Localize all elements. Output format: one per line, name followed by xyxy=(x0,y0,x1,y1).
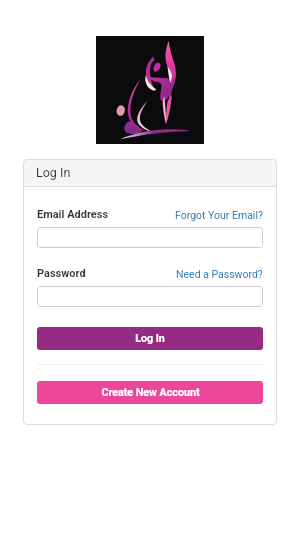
staticText: Password xyxy=(37,267,86,280)
button[interactable]: Password field xyxy=(37,286,263,307)
button[interactable]: Forgot Your Email? xyxy=(175,209,263,221)
button[interactable]: Create New Account xyxy=(37,381,263,404)
button[interactable]: Need a Password? xyxy=(176,268,263,280)
other: App logo xyxy=(96,36,204,144)
button[interactable]: Email address field xyxy=(37,227,263,248)
staticText: Create New Account xyxy=(101,386,200,399)
staticText: Need a Password? xyxy=(176,268,263,280)
staticText: Log In xyxy=(135,332,165,345)
button[interactable]: Log In xyxy=(37,327,263,350)
staticText: Email Address xyxy=(37,208,109,221)
staticText: Log In xyxy=(36,165,71,180)
staticText: Forgot Your Email? xyxy=(175,209,263,221)
